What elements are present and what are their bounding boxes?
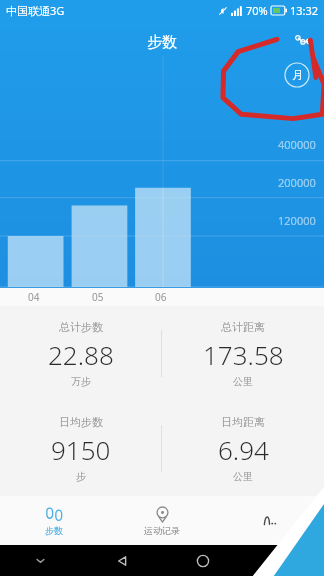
button[interactable]: Hide keyboard xyxy=(0,545,81,576)
staticText: 120000 xyxy=(278,213,316,228)
button[interactable]: 月 xyxy=(284,62,310,88)
staticText: 13:32 xyxy=(290,3,319,18)
staticText: 173.58 xyxy=(203,337,284,372)
button[interactable]: Back xyxy=(81,545,162,576)
button[interactable]: 总计步数 xyxy=(0,306,161,401)
staticText: 05 xyxy=(92,290,104,304)
staticText: 总计距离 xyxy=(221,320,265,334)
staticText: 日均步数 xyxy=(59,415,103,429)
staticText: 步 xyxy=(76,470,86,483)
button[interactable]: Home xyxy=(162,545,243,576)
button[interactable]: 运动记录 xyxy=(108,496,216,545)
staticText: 200000 xyxy=(278,175,316,190)
button[interactable]: Share xyxy=(290,28,316,54)
button[interactable]: 步数 xyxy=(0,496,108,545)
staticText: 总计步数 xyxy=(59,320,103,334)
staticText: 6.94 xyxy=(218,432,269,467)
staticText: 06 xyxy=(155,290,167,304)
button[interactable]: 日均步数 xyxy=(0,401,161,496)
staticText: 运动记录 xyxy=(144,525,180,536)
staticText: 中国联通3G xyxy=(6,3,65,18)
staticText: 公里 xyxy=(233,470,253,483)
staticText: 公里 xyxy=(233,375,253,388)
staticText: 70% xyxy=(246,3,268,18)
button[interactable]: 日均距离 xyxy=(162,401,324,496)
staticText: 步数 xyxy=(147,33,177,52)
staticText: 04 xyxy=(28,290,40,304)
staticText: 9150 xyxy=(51,432,111,467)
button[interactable]: 总计距离 xyxy=(162,306,324,401)
staticText: 日均距离 xyxy=(221,415,265,429)
staticText: 400000 xyxy=(278,137,316,152)
staticText: 万步 xyxy=(71,375,91,388)
staticText: 月 xyxy=(292,68,303,82)
staticText: 22.88 xyxy=(48,337,114,372)
button[interactable]: More xyxy=(216,496,324,545)
staticText: 步数 xyxy=(45,525,63,536)
